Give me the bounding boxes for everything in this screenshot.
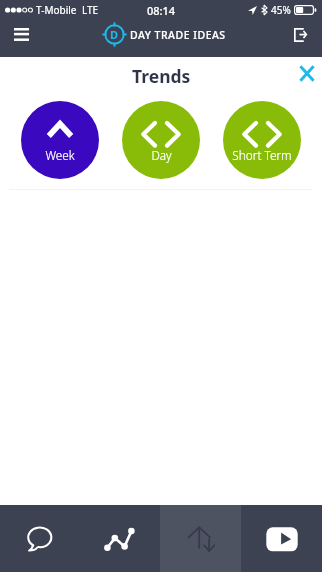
- staticText: 45%: [271, 3, 291, 17]
- staticText: D: [110, 27, 119, 42]
- button[interactable]: Close: [292, 60, 322, 90]
- button[interactable]: Chat: [0, 505, 80, 572]
- button[interactable]: Trends: [160, 505, 241, 572]
- staticText: Short Term: [232, 147, 292, 163]
- button[interactable]: Day: [122, 101, 200, 179]
- staticText: T-Mobile: [36, 3, 77, 17]
- button[interactable]: Log out: [286, 21, 314, 49]
- button[interactable]: Short Term: [223, 101, 301, 179]
- button[interactable]: Video: [241, 505, 322, 572]
- button[interactable]: Charts: [80, 505, 160, 572]
- staticText: DAY TRADE IDEAS: [130, 28, 226, 42]
- staticText: Trends: [132, 64, 191, 88]
- staticText: Week: [45, 147, 75, 163]
- button[interactable]: Week: [21, 101, 99, 179]
- button[interactable]: Menu: [7, 21, 35, 49]
- staticText: 08:14: [147, 3, 176, 18]
- staticText: LTE: [82, 3, 99, 17]
- staticText: Day: [151, 147, 172, 163]
